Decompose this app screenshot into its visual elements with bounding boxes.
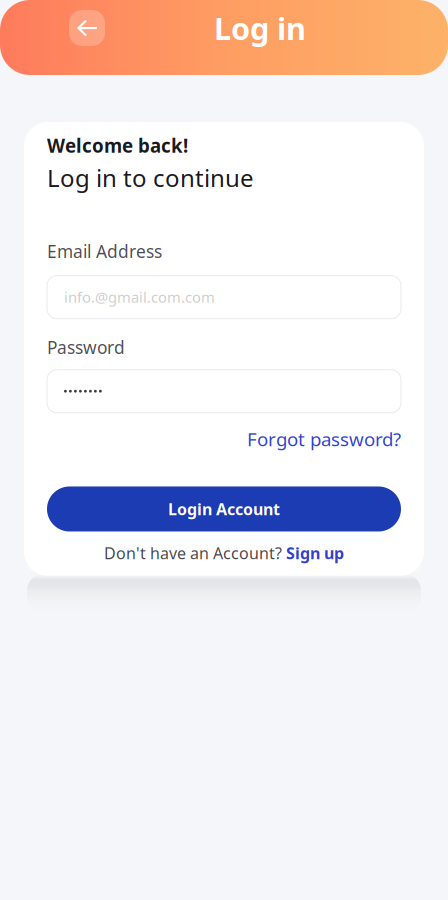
button[interactable]: Login Account bbox=[47, 486, 401, 531]
button[interactable]: Forgot password? bbox=[47, 427, 401, 451]
staticText: Password bbox=[47, 336, 125, 359]
staticText: Log in bbox=[214, 8, 306, 48]
staticText: Login Account bbox=[168, 498, 280, 520]
staticText: Log in to continue bbox=[47, 162, 254, 194]
staticText: Don't have an Account? bbox=[104, 542, 282, 564]
staticText: Email Address bbox=[47, 240, 162, 263]
button[interactable]: Back bbox=[69, 10, 105, 46]
staticText: Sign up bbox=[286, 542, 344, 564]
staticText: Forgot password? bbox=[247, 427, 401, 451]
staticText: info.@gmail.com.com bbox=[64, 287, 215, 307]
button[interactable]: Sign up bbox=[286, 542, 344, 564]
staticText: Welcome back! bbox=[47, 133, 188, 158]
